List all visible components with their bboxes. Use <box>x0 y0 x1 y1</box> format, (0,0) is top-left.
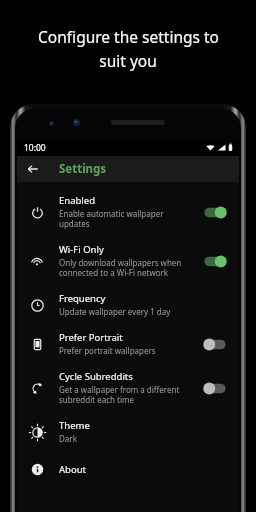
staticText: Configure the settings to <box>38 26 219 47</box>
button[interactable]: About <box>17 451 239 487</box>
button[interactable]: Cycle Subreddits toggle <box>200 378 230 398</box>
button[interactable]: Enabled toggle <box>200 202 230 222</box>
button[interactable]: Prefer Portrait <box>17 324 239 363</box>
staticText: Update wallpaper every 1 day <box>59 306 171 317</box>
staticText: Only download wallpapers when connected … <box>59 257 182 278</box>
button[interactable]: Enabled <box>17 187 239 236</box>
button[interactable]: Back <box>22 158 44 180</box>
staticText: Settings <box>59 161 107 177</box>
staticText: Enable automatic wallpaper updates <box>59 208 194 229</box>
staticText: Get a wallpaper from a different subredd… <box>59 384 180 405</box>
staticText: Cycle Subreddits <box>59 370 133 383</box>
staticText: suit you <box>99 50 157 71</box>
staticText: Prefer Portrait <box>59 331 123 344</box>
staticText: Dark <box>59 433 77 444</box>
button[interactable]: Theme <box>17 412 239 451</box>
staticText: Enabled <box>59 194 95 207</box>
staticText: About <box>59 463 86 476</box>
staticText: Theme <box>59 419 90 432</box>
button[interactable]: Prefer Portrait toggle <box>200 334 230 354</box>
button[interactable]: Wi-Fi Only <box>17 236 239 285</box>
button[interactable]: Wi-Fi Only toggle <box>200 251 230 271</box>
staticText: Frequency <box>59 292 106 305</box>
staticText: 10:00 <box>24 142 46 154</box>
button[interactable]: Cycle Subreddits <box>17 363 239 412</box>
staticText: Prefer portrait wallpapers <box>59 345 156 356</box>
button[interactable]: Frequency <box>17 285 239 324</box>
staticText: Wi-Fi Only <box>59 243 104 256</box>
